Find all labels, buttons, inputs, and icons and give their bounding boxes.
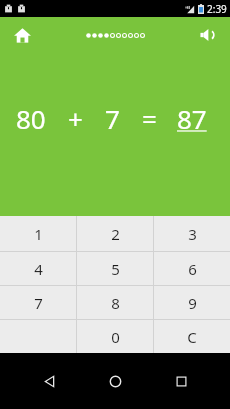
staticText: 4 bbox=[34, 259, 43, 279]
button[interactable]: 5 bbox=[77, 252, 153, 285]
staticText: 87 bbox=[177, 101, 207, 136]
button[interactable]: 0 bbox=[77, 320, 153, 353]
button[interactable]: Home bbox=[98, 364, 132, 398]
button[interactable]: Sound bbox=[194, 21, 222, 49]
button[interactable]: 8 bbox=[77, 286, 153, 319]
button[interactable]: 1 bbox=[0, 216, 76, 251]
button[interactable]: 3 bbox=[154, 216, 230, 251]
button[interactable]: 6 bbox=[154, 252, 230, 285]
staticText: + bbox=[68, 101, 83, 136]
staticText: 1 bbox=[34, 224, 43, 244]
button[interactable]: 2 bbox=[77, 216, 153, 251]
staticText: 8 bbox=[111, 293, 120, 313]
staticText: = bbox=[142, 101, 157, 136]
staticText: 6 bbox=[188, 259, 197, 279]
button[interactable]: Home bbox=[8, 21, 36, 49]
staticText: 9 bbox=[188, 293, 197, 313]
button[interactable]: 4 bbox=[0, 252, 76, 285]
staticText: 2:39 bbox=[207, 2, 227, 16]
button[interactable]: Back bbox=[32, 364, 66, 398]
staticText: C bbox=[187, 327, 197, 347]
button[interactable]: 7 bbox=[0, 286, 76, 319]
staticText: 5 bbox=[111, 259, 120, 279]
staticText: 0 bbox=[111, 327, 120, 347]
button[interactable]: C bbox=[154, 320, 230, 353]
staticText: 2 bbox=[111, 224, 120, 244]
staticText: 7 bbox=[105, 101, 120, 136]
button[interactable]: Recents bbox=[164, 364, 198, 398]
staticText: 3 bbox=[188, 224, 197, 244]
button[interactable]: 9 bbox=[154, 286, 230, 319]
button[interactable]: 87 bbox=[177, 101, 207, 136]
staticText: 80 bbox=[16, 101, 46, 136]
staticText: 7 bbox=[34, 293, 43, 313]
